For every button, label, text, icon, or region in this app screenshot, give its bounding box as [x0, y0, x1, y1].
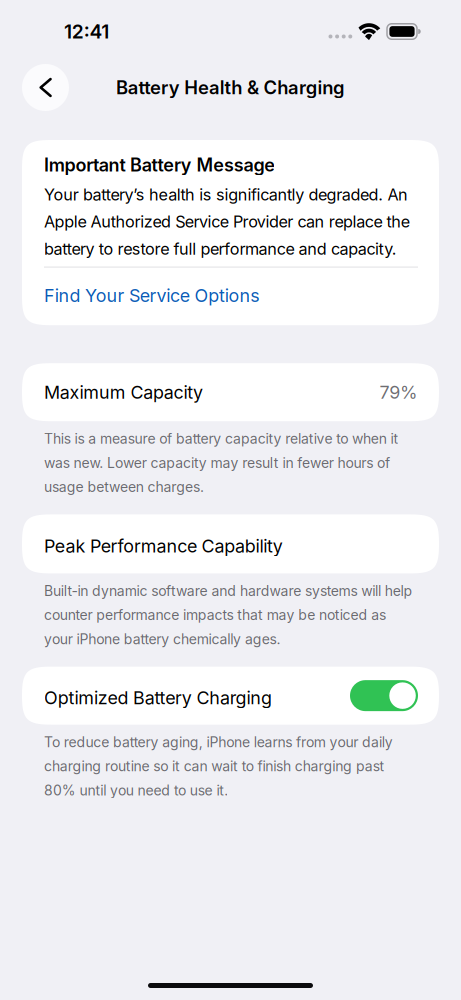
- staticText: Find Your Service Options: [44, 285, 259, 306]
- staticText: Important Battery Message: [44, 154, 275, 176]
- staticText: Optimized Battery Charging: [44, 687, 272, 708]
- staticText: To reduce battery aging, iPhone learns f…: [44, 734, 393, 799]
- staticText: Maximum Capacity: [44, 381, 203, 403]
- button[interactable]: Peak Performance Capability: [0, 514, 461, 573]
- staticText: This is a measure of battery capacity re…: [44, 430, 398, 495]
- button[interactable]: Optimized Battery Charging: [350, 680, 418, 711]
- staticText: Peak Performance Capability: [44, 535, 283, 557]
- staticText: 12:41: [64, 20, 109, 43]
- button[interactable]: Back: [22, 64, 69, 111]
- staticText: Your battery’s health is significantly d…: [44, 185, 410, 259]
- staticText: Built-in dynamic software and hardware s…: [44, 582, 412, 648]
- button[interactable]: Find Your Service Options: [44, 285, 418, 306]
- staticText: Battery Health & Charging: [116, 76, 345, 99]
- staticText: 79%: [379, 381, 418, 403]
